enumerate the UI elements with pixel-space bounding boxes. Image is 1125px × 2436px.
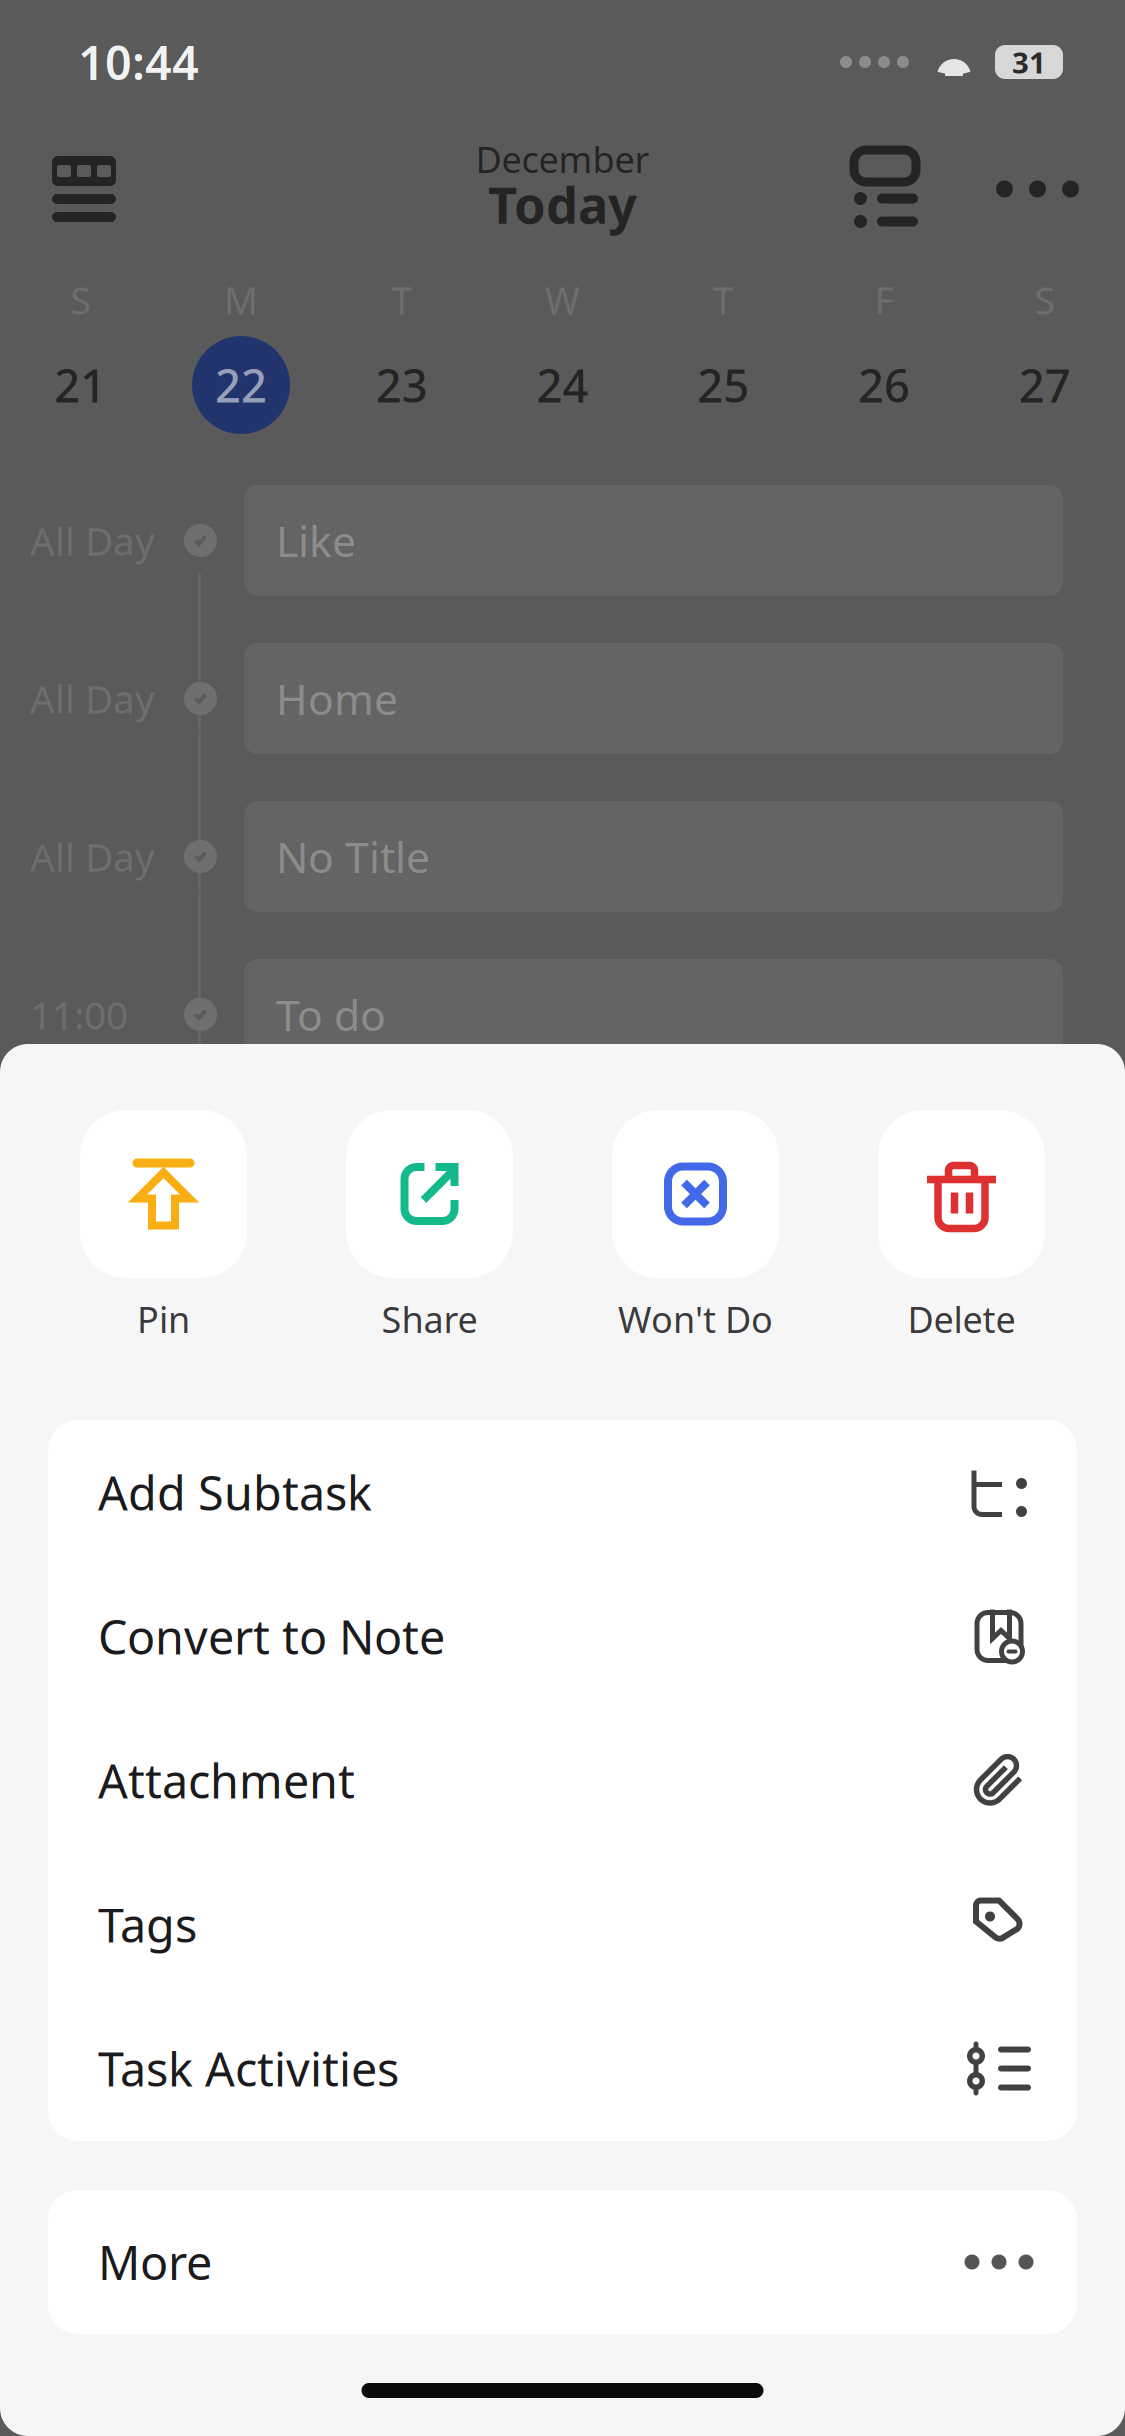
staticText: Attachment: [98, 1749, 355, 1811]
button[interactable]: T: [321, 280, 482, 434]
staticText: More: [98, 2231, 212, 2293]
button[interactable]: Tags: [48, 1852, 1077, 1996]
staticText: 26: [858, 355, 910, 415]
button[interactable]: List view: [854, 152, 918, 226]
staticText: T: [391, 275, 412, 325]
staticText: 25: [697, 355, 749, 415]
staticText: All Day: [30, 515, 155, 566]
staticText: Like: [276, 512, 356, 569]
button[interactable]: Won't Do: [580, 1110, 810, 1346]
staticText: M: [224, 275, 258, 325]
button[interactable]: Attachment: [48, 1708, 1077, 1852]
button[interactable]: W: [482, 280, 643, 434]
button[interactable]: Pin: [48, 1110, 278, 1346]
staticText: F: [874, 275, 893, 325]
staticText: December: [475, 135, 649, 183]
staticText: 11:00: [30, 989, 128, 1040]
staticText: 31: [1012, 42, 1046, 81]
staticText: Share: [381, 1295, 477, 1343]
staticText: All Day: [30, 831, 155, 882]
button[interactable]: More: [48, 2190, 1077, 2334]
staticText: Pin: [137, 1295, 190, 1343]
staticText: S: [1035, 275, 1055, 325]
button[interactable]: More options: [996, 180, 1079, 197]
button[interactable]: Convert to Note: [48, 1564, 1077, 1708]
staticText: W: [545, 275, 580, 325]
button[interactable]: M: [161, 280, 321, 434]
button[interactable]: Share: [314, 1110, 544, 1346]
button[interactable]: S: [964, 280, 1125, 434]
button[interactable]: T: [643, 280, 804, 434]
staticText: 27: [1019, 355, 1071, 415]
button[interactable]: Delete: [846, 1110, 1076, 1346]
staticText: 24: [536, 355, 588, 415]
staticText: Convert to Note: [98, 1605, 445, 1667]
staticText: No Title: [276, 828, 430, 885]
staticText: 23: [376, 355, 428, 415]
button[interactable]: F: [804, 280, 964, 434]
staticText: S: [70, 275, 90, 325]
staticText: Task Activities: [98, 2037, 399, 2099]
button[interactable]: Task Activities: [48, 1996, 1077, 2140]
staticText: Tags: [98, 1893, 197, 1955]
button[interactable]: S: [0, 280, 161, 434]
staticText: To do: [276, 986, 386, 1043]
staticText: Delete: [907, 1295, 1015, 1343]
staticText: Home: [276, 670, 398, 727]
staticText: Today: [488, 170, 637, 238]
staticText: 22: [215, 355, 267, 415]
staticText: Won't Do: [618, 1295, 773, 1343]
staticText: 21: [54, 355, 106, 415]
staticText: T: [713, 275, 734, 325]
button[interactable]: Timeline view: [52, 152, 116, 226]
button[interactable]: Add Subtask: [48, 1420, 1077, 1564]
staticText: All Day: [30, 673, 155, 724]
staticText: Add Subtask: [98, 1461, 372, 1523]
staticText: 10:44: [78, 31, 199, 93]
